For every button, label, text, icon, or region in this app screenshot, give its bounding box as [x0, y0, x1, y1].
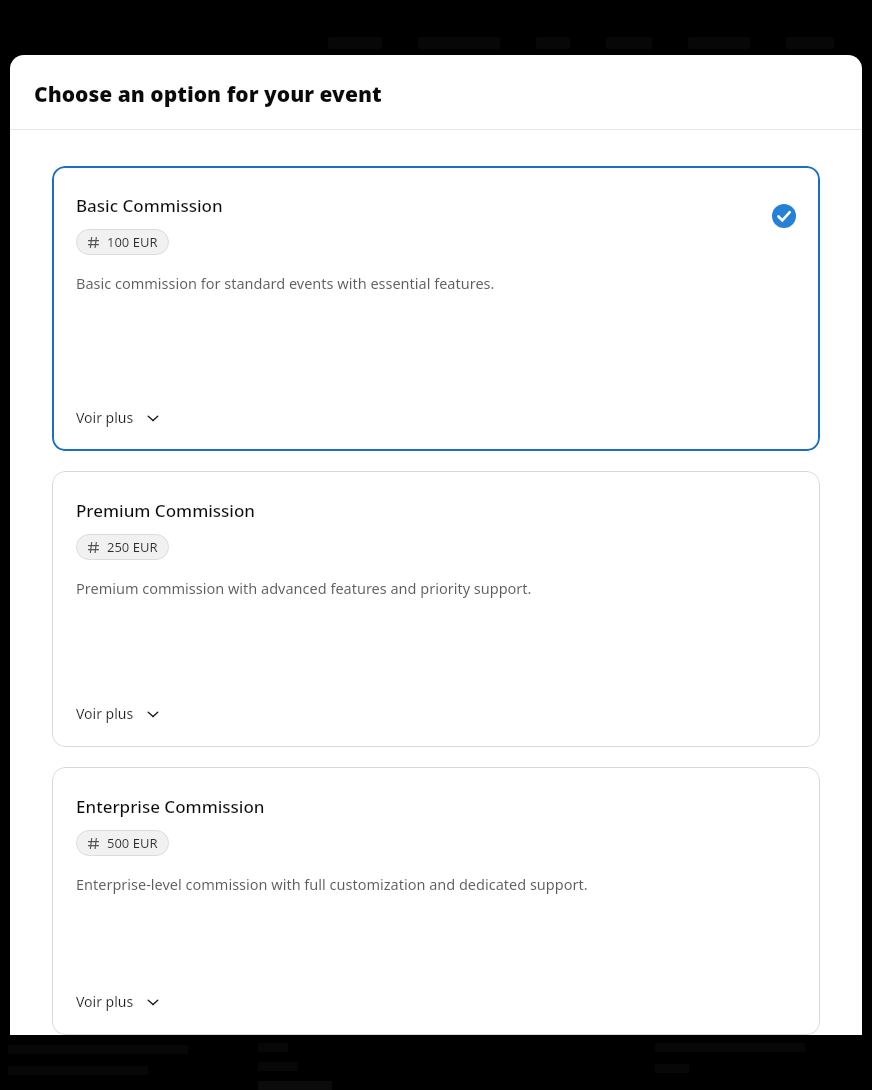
staticText: Voir plus: [76, 408, 134, 427]
staticText: 500 EUR: [107, 834, 158, 852]
button[interactable]: Premium Commission: [52, 471, 820, 747]
button[interactable]: 100 EUR: [87, 233, 158, 251]
staticText: Basic commission for standard events wit…: [76, 273, 495, 293]
staticText: 100 EUR: [107, 233, 158, 251]
button[interactable]: Voir plus: [76, 408, 160, 427]
button[interactable]: Enterprise Commission: [52, 767, 820, 1035]
staticText: Voir plus: [76, 704, 134, 723]
button[interactable]: Selected: [772, 204, 796, 228]
staticText: Choose an option for your event: [34, 80, 382, 109]
staticText: Premium Commission: [76, 499, 255, 522]
button[interactable]: Voir plus: [76, 704, 160, 723]
button[interactable]: Basic Commission: [52, 166, 820, 451]
staticText: Voir plus: [76, 992, 134, 1011]
staticText: 250 EUR: [107, 538, 158, 556]
button[interactable]: 500 EUR: [87, 834, 158, 852]
button[interactable]: 250 EUR: [87, 538, 158, 556]
staticText: Premium commission with advanced feature…: [76, 578, 532, 598]
staticText: Enterprise-level commission with full cu…: [76, 874, 588, 894]
staticText: Enterprise Commission: [76, 795, 265, 818]
button[interactable]: Voir plus: [76, 992, 160, 1011]
staticText: Basic Commission: [76, 194, 223, 217]
